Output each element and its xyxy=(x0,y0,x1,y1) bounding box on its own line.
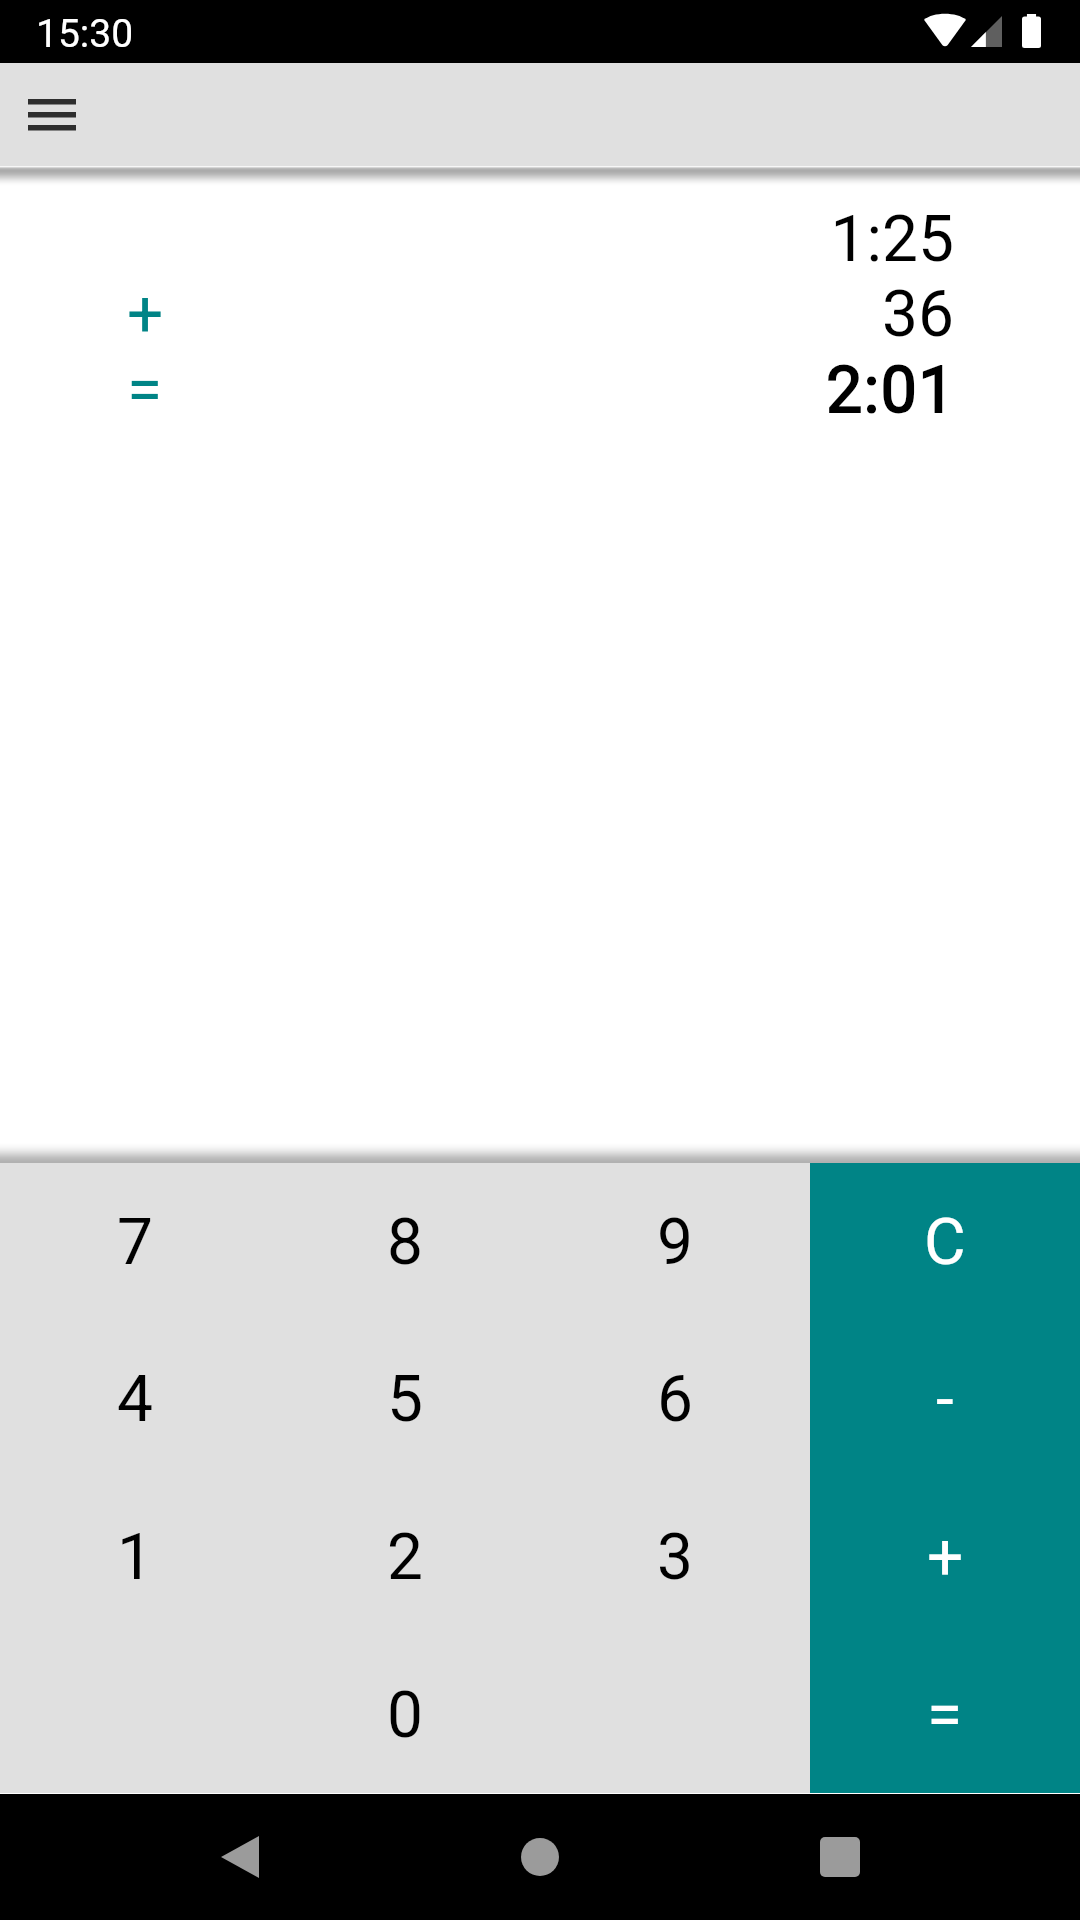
button[interactable]: Equals xyxy=(810,1635,1080,1793)
button[interactable]: Back xyxy=(180,1797,300,1917)
staticText: 7 xyxy=(117,1205,153,1280)
button[interactable]: 0 xyxy=(270,1635,540,1793)
button[interactable]: Home xyxy=(480,1797,600,1917)
button[interactable]: 2 xyxy=(270,1477,540,1635)
button[interactable]: Recent apps xyxy=(780,1797,900,1917)
staticText: 36 xyxy=(882,277,954,352)
button[interactable]: 8 xyxy=(270,1163,540,1320)
staticText: 8 xyxy=(387,1205,423,1280)
button[interactable]: Open navigation drawer xyxy=(4,67,100,163)
button[interactable]: 9 xyxy=(540,1163,810,1320)
button[interactable]: Clear xyxy=(810,1163,1080,1320)
staticText: C xyxy=(924,1205,966,1280)
staticText: 1:25 xyxy=(830,202,954,277)
staticText: 1 xyxy=(117,1520,153,1595)
staticText: 2 xyxy=(387,1520,423,1595)
button[interactable]: 7 xyxy=(0,1163,270,1320)
button[interactable]: 5 xyxy=(270,1320,540,1477)
button[interactable]: 4 xyxy=(0,1320,270,1477)
button[interactable]: 1:25 xyxy=(0,194,1080,284)
staticText: 0 xyxy=(387,1678,423,1753)
staticText: + xyxy=(927,1520,964,1595)
staticText: = xyxy=(127,353,163,428)
button[interactable]: Add xyxy=(810,1477,1080,1635)
staticText: - xyxy=(936,1362,954,1437)
button[interactable]: Subtract xyxy=(810,1320,1080,1477)
button[interactable]: 1 xyxy=(0,1477,270,1635)
staticText: 4 xyxy=(117,1362,153,1437)
button[interactable]: = xyxy=(0,345,1080,435)
button[interactable]: 3 xyxy=(540,1477,810,1635)
staticText: 9 xyxy=(657,1205,693,1280)
staticText: 15:30 xyxy=(36,11,134,57)
button[interactable]: 6 xyxy=(540,1320,810,1477)
staticText: 5 xyxy=(387,1362,423,1437)
staticText: 3 xyxy=(657,1520,693,1595)
staticText: = xyxy=(927,1678,963,1753)
staticText: 2:01 xyxy=(826,353,956,428)
staticText: 6 xyxy=(657,1362,693,1437)
staticText: + xyxy=(127,277,164,352)
button[interactable]: + xyxy=(0,269,1080,359)
